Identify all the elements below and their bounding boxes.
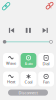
button[interactable]: Fan <box>38 72 54 86</box>
staticText: Wave <box>6 60 16 66</box>
button[interactable]: Cool <box>21 72 36 86</box>
button[interactable]: Pause <box>22 25 35 36</box>
button[interactable]: Heat <box>3 72 19 86</box>
button[interactable]: Disconnect <box>45 2 53 10</box>
staticText: Heat <box>7 79 15 84</box>
staticText: Fan <box>43 79 49 85</box>
staticText: Disconnect <box>18 90 37 95</box>
button[interactable]: Connected <box>2 2 11 11</box>
button[interactable]: Previous track <box>5 25 18 36</box>
button[interactable]: Wave <box>3 53 19 68</box>
button[interactable]: Disconnect <box>8 89 48 96</box>
staticText: Dial <box>43 61 50 66</box>
button[interactable]: Next track <box>39 25 52 36</box>
staticText: Cool <box>24 79 32 85</box>
staticText: Auto <box>24 61 32 66</box>
button[interactable]: Auto <box>21 53 36 68</box>
button[interactable]: Dial <box>38 53 54 68</box>
